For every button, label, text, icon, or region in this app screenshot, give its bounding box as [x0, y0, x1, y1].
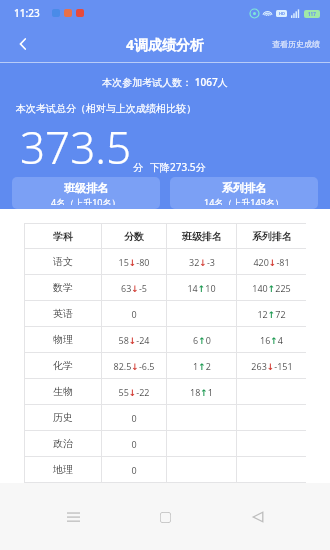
- staticText: 4调成绩分析: [126, 35, 205, 54]
- staticText: 分: [133, 161, 143, 174]
- staticText: 语文: [53, 255, 73, 268]
- staticText: 58↓-24: [118, 334, 150, 346]
- staticText: 55↓-22: [118, 386, 150, 398]
- staticText: 系列排名: [222, 181, 266, 195]
- button[interactable]: 系列排名: [170, 177, 318, 209]
- staticText: 32↓-3: [189, 256, 215, 268]
- staticText: 数学: [53, 281, 73, 294]
- button[interactable]: 班级排名: [12, 177, 160, 209]
- staticText: 0: [131, 464, 137, 476]
- staticText: 0: [131, 308, 137, 320]
- button[interactable]: Back: [6, 27, 40, 61]
- staticText: 生物: [53, 385, 73, 398]
- staticText: 82.5↓-6.5: [113, 360, 155, 372]
- staticText: 0: [131, 412, 137, 424]
- staticText: 历史: [53, 411, 73, 424]
- staticText: 政治: [53, 437, 73, 450]
- staticText: 英语: [53, 307, 73, 320]
- staticText: 4名（上升10名）: [51, 196, 121, 205]
- staticText: 物理: [53, 333, 73, 346]
- staticText: 140↑225: [252, 282, 291, 294]
- staticText: 查看历史成绩: [272, 39, 320, 49]
- staticText: 本次参加考试人数： 1067人: [0, 75, 330, 89]
- staticText: 18↑1: [190, 386, 213, 398]
- staticText: 14名（上升149名）: [204, 196, 284, 205]
- button[interactable]: Recent apps: [53, 497, 93, 537]
- staticText: 263↓-151: [251, 360, 293, 372]
- staticText: 117: [308, 11, 316, 17]
- button[interactable]: Home: [145, 497, 185, 537]
- staticText: HD: [279, 11, 285, 16]
- staticText: 15↓-80: [118, 256, 150, 268]
- staticText: 63↓-5: [121, 282, 147, 294]
- staticText: 12↑72: [257, 308, 286, 320]
- staticText: 本次考试总分（相对与上次成绩相比较）: [16, 102, 330, 115]
- staticText: 地理: [53, 463, 73, 476]
- staticText: 420↓-81: [253, 256, 290, 268]
- staticText: 0: [131, 438, 137, 450]
- staticText: 下降273.5分: [150, 160, 206, 174]
- staticText: 1↑2: [193, 360, 211, 372]
- staticText: 学科: [53, 230, 73, 243]
- staticText: 16↑4: [260, 334, 283, 346]
- staticText: 373.5: [20, 117, 132, 177]
- staticText: 班级排名: [182, 230, 222, 243]
- button[interactable]: 查看历史成绩: [262, 31, 330, 57]
- staticText: 14↑10: [187, 282, 216, 294]
- button[interactable]: Back: [238, 497, 278, 537]
- staticText: 分数: [124, 230, 144, 243]
- staticText: 11:23: [14, 6, 40, 20]
- staticText: 系列排名: [252, 230, 292, 243]
- staticText: 6↑0: [193, 334, 211, 346]
- staticText: 班级排名: [64, 181, 108, 195]
- staticText: 化学: [53, 359, 73, 372]
